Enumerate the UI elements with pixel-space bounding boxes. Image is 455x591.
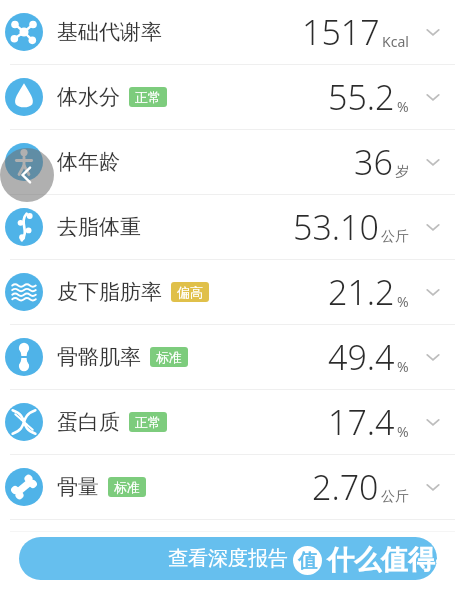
button[interactable]: 体年龄 xyxy=(0,130,455,194)
button[interactable]: 展开 xyxy=(411,400,455,444)
staticText: 骨量 xyxy=(57,474,99,500)
button[interactable]: 展开 xyxy=(411,205,455,249)
staticText: 骨骼肌率 xyxy=(57,344,141,370)
button[interactable]: 展开 xyxy=(411,10,455,54)
staticText: 21.2 xyxy=(328,269,395,315)
button[interactable]: 去脂体重 xyxy=(0,195,455,259)
staticText: Kcal xyxy=(382,32,409,51)
button[interactable]: 展开 xyxy=(411,270,455,314)
button[interactable]: 体水分 xyxy=(0,65,455,129)
staticText: % xyxy=(397,97,409,116)
button[interactable]: 骨骼肌率 xyxy=(0,325,455,389)
staticText: 标准 xyxy=(156,349,182,365)
button[interactable]: 皮下脂肪率 xyxy=(0,260,455,324)
staticText: 基础代谢率 xyxy=(57,19,162,45)
staticText: 17.4 xyxy=(328,399,395,445)
staticText: 什么值得买 xyxy=(327,543,455,577)
staticText: 偏高 xyxy=(177,284,203,300)
staticText: 公斤 xyxy=(381,228,409,246)
button[interactable]: 查看深度报告 xyxy=(19,537,437,580)
staticText: 体年龄 xyxy=(57,149,120,175)
staticText: 公斤 xyxy=(381,488,409,506)
staticText: 标准 xyxy=(114,479,140,495)
staticText: 正常 xyxy=(135,89,161,105)
staticText: 1517 xyxy=(302,9,380,55)
staticText: 正常 xyxy=(135,414,161,430)
staticText: 49.4 xyxy=(328,334,395,380)
staticText: 皮下脂肪率 xyxy=(57,279,162,305)
staticText: 值 xyxy=(298,549,317,573)
staticText: % xyxy=(397,422,409,441)
staticText: 55.2 xyxy=(328,74,395,120)
staticText: 53.10 xyxy=(293,204,379,250)
button[interactable]: 蛋白质 xyxy=(0,390,455,454)
staticText: 蛋白质 xyxy=(57,409,120,435)
button[interactable]: 骨量 xyxy=(0,455,455,519)
staticText: 岁 xyxy=(395,163,409,181)
staticText: 体水分 xyxy=(57,84,120,110)
button[interactable]: 基础代谢率 xyxy=(0,0,455,64)
button[interactable]: 返回 xyxy=(0,148,54,202)
staticText: 2.70 xyxy=(312,464,379,510)
button[interactable]: 展开 xyxy=(411,335,455,379)
staticText: % xyxy=(397,292,409,311)
button[interactable]: 展开 xyxy=(411,140,455,184)
staticText: 去脂体重 xyxy=(57,214,141,240)
staticText: 查看深度报告 xyxy=(19,546,437,571)
staticText: 36 xyxy=(354,139,393,185)
button[interactable]: 展开 xyxy=(411,75,455,119)
button[interactable]: 展开 xyxy=(411,465,455,509)
staticText: % xyxy=(397,357,409,376)
